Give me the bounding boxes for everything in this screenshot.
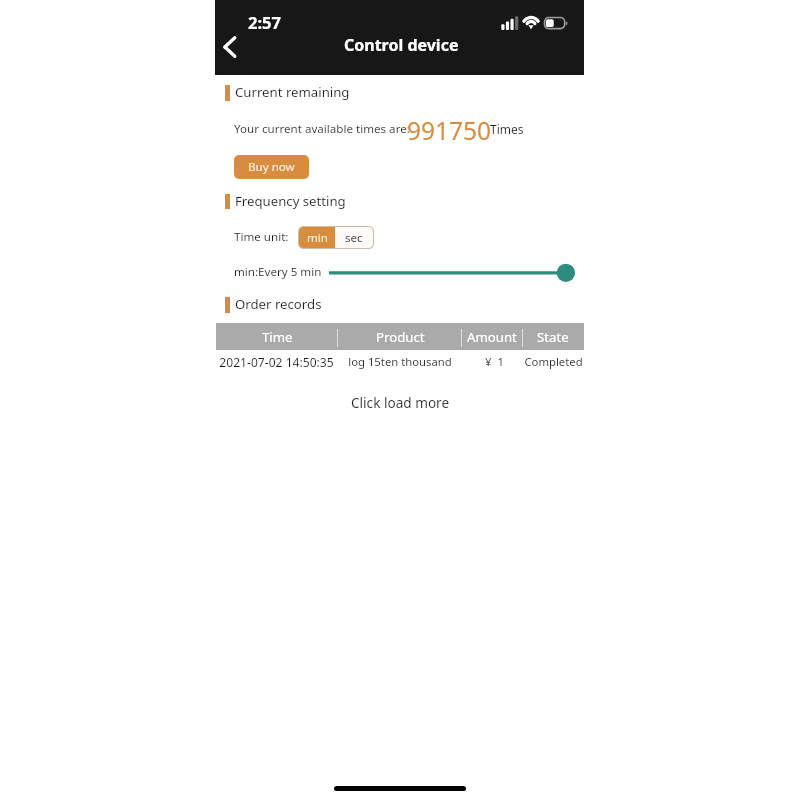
button[interactable]: State — [522, 323, 584, 350]
staticText: Order records — [235, 295, 322, 313]
staticText: Control device — [344, 34, 459, 56]
button[interactable]: Back — [214, 27, 246, 67]
staticText: Buy now — [248, 159, 295, 175]
staticText: 2:57 — [248, 11, 281, 33]
button[interactable]: Time — [216, 323, 338, 350]
button[interactable]: Order 2021-07-02 14:50:35 — [216, 352, 584, 372]
staticText: Product — [376, 328, 425, 346]
button[interactable]: Amount — [461, 323, 522, 350]
staticText: Time unit: — [234, 229, 289, 245]
button[interactable]: Frequency slider — [325, 262, 577, 284]
staticText: Current remaining — [235, 83, 350, 101]
staticText: State — [537, 328, 569, 346]
button[interactable]: Buy now — [234, 155, 309, 179]
staticText: ¥ 1 — [485, 354, 504, 369]
staticText: Your current available times are: — [234, 121, 410, 137]
staticText: sec — [345, 230, 363, 246]
staticText: min — [307, 230, 328, 246]
staticText: 2021-07-02 14:50:35 — [219, 354, 334, 370]
button[interactable]: Click load more — [340, 393, 460, 411]
staticText: Amount — [467, 328, 517, 346]
staticText: 991750 — [407, 114, 492, 147]
staticText: min:Every 5 min — [234, 264, 322, 280]
staticText: log 15ten thousand — [348, 354, 452, 369]
staticText: Completed — [524, 354, 583, 369]
staticText: Click load more — [351, 393, 450, 411]
button[interactable]: sec — [335, 227, 373, 248]
button[interactable]: Product — [338, 323, 462, 350]
staticText: Frequency setting — [235, 192, 346, 210]
staticText: Times — [490, 121, 524, 137]
button[interactable]: min — [299, 227, 335, 248]
staticText: Time — [262, 328, 293, 346]
